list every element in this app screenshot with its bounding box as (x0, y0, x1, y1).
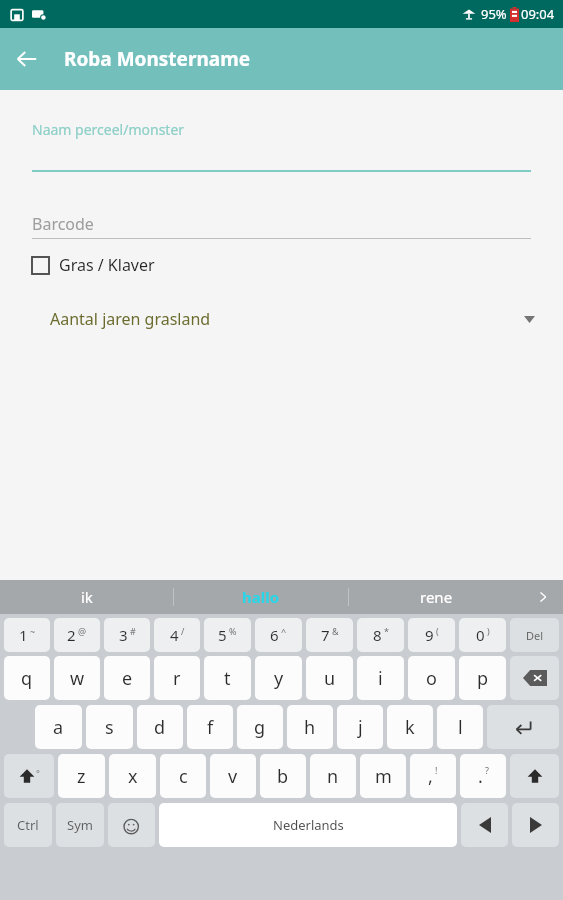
button[interactable]: . (460, 754, 506, 798)
staticText: ° (36, 767, 40, 779)
button[interactable]: q (4, 656, 50, 700)
button[interactable]: 8 (357, 618, 404, 652)
staticText: , (428, 764, 433, 789)
staticText: t (224, 666, 231, 691)
button[interactable]: i (357, 656, 404, 700)
staticText: k (405, 715, 415, 740)
staticText: e (122, 666, 133, 691)
staticText: ) (487, 625, 490, 637)
staticText: v (228, 764, 238, 789)
staticText: ~ (30, 625, 36, 637)
button[interactable]: Emoji (108, 803, 155, 847)
button[interactable]: r (154, 656, 200, 700)
button[interactable]: k (387, 705, 433, 749)
staticText: 6 (270, 625, 279, 645)
staticText: Ctrl (17, 816, 39, 834)
staticText: ^ (281, 625, 287, 637)
button[interactable]: g (237, 705, 283, 749)
button[interactable]: Shift (510, 754, 559, 798)
staticText: % (229, 625, 237, 637)
staticText: Barcode (32, 213, 94, 235)
button[interactable]: m (360, 754, 406, 798)
staticText: & (332, 625, 339, 637)
button[interactable]: Enter (487, 705, 559, 749)
button[interactable]: x (109, 754, 156, 798)
button[interactable]: rene (349, 580, 523, 614)
button[interactable]: Move cursor right (512, 803, 559, 847)
button[interactable]: Back (0, 32, 54, 86)
staticText: Del (526, 628, 544, 643)
button[interactable]: 1 (4, 618, 50, 652)
button[interactable]: Move cursor left (461, 803, 508, 847)
button[interactable]: f (187, 705, 233, 749)
button[interactable]: Aantal jaren grasland (50, 304, 535, 334)
staticText: y (274, 666, 284, 691)
button[interactable]: l (437, 705, 483, 749)
button[interactable]: hallo (174, 580, 348, 614)
button[interactable]: n (310, 754, 356, 798)
button[interactable]: u (306, 656, 353, 700)
button[interactable]: Naam perceel/monster (32, 120, 531, 170)
button[interactable]: Sym (56, 803, 104, 847)
button[interactable]: 4 (154, 618, 200, 652)
button[interactable]: a (35, 705, 82, 749)
staticText: h (304, 715, 316, 740)
staticText: Sym (67, 816, 93, 834)
staticText: 95% (481, 5, 507, 23)
staticText: hallo (242, 587, 280, 607)
button[interactable]: t (204, 656, 251, 700)
button[interactable]: s (86, 705, 133, 749)
staticText: ik (81, 587, 93, 607)
staticText: 0 (476, 625, 485, 645)
button[interactable]: , (410, 754, 456, 798)
staticText: l (458, 715, 463, 740)
staticText: f (207, 715, 214, 740)
staticText: 8 (373, 625, 382, 645)
staticText: o (426, 666, 437, 691)
button[interactable]: w (54, 656, 100, 700)
button[interactable]: h (287, 705, 333, 749)
button[interactable]: Take photo (488, 597, 540, 649)
button[interactable]: c (160, 754, 206, 798)
button[interactable]: p (459, 656, 506, 700)
button[interactable]: 7 (306, 618, 353, 652)
staticText: s (105, 715, 114, 740)
staticText: 5 (218, 625, 227, 645)
button[interactable]: 0 (459, 618, 506, 652)
staticText: @ (78, 625, 87, 637)
staticText: 9 (425, 625, 434, 645)
staticText: * (384, 625, 389, 637)
button[interactable]: 9 (408, 618, 455, 652)
button[interactable]: Shift (4, 754, 54, 798)
staticText: . (478, 764, 483, 789)
button[interactable]: Nederlands (159, 803, 457, 847)
staticText: p (477, 666, 489, 691)
button[interactable]: Gras / Klaver (32, 254, 155, 276)
button[interactable]: z (58, 754, 105, 798)
button[interactable]: d (137, 705, 183, 749)
button[interactable]: 2 (54, 618, 100, 652)
button[interactable]: b (260, 754, 306, 798)
button[interactable]: Barcode (32, 210, 531, 238)
button[interactable]: 5 (204, 618, 251, 652)
button[interactable]: v (210, 754, 256, 798)
button[interactable]: More suggestions (523, 580, 563, 614)
staticText: Naam perceel/monster (32, 120, 185, 139)
button[interactable]: Ctrl (4, 803, 52, 847)
button[interactable]: 6 (255, 618, 302, 652)
button[interactable]: 3 (104, 618, 150, 652)
staticText: c (179, 764, 188, 789)
button[interactable]: Backspace (510, 656, 559, 700)
button[interactable]: o (408, 656, 455, 700)
button[interactable]: ik (0, 580, 173, 614)
button[interactable]: j (337, 705, 383, 749)
staticText: z (77, 764, 86, 789)
staticText: n (327, 764, 339, 789)
button[interactable]: y (255, 656, 302, 700)
staticText: x (128, 764, 138, 789)
button[interactable]: Del (510, 618, 559, 652)
button[interactable]: e (104, 656, 150, 700)
staticText: Aantal jaren grasland (50, 308, 211, 330)
staticText: Roba Monstername (64, 46, 251, 72)
staticText: # (130, 625, 136, 637)
